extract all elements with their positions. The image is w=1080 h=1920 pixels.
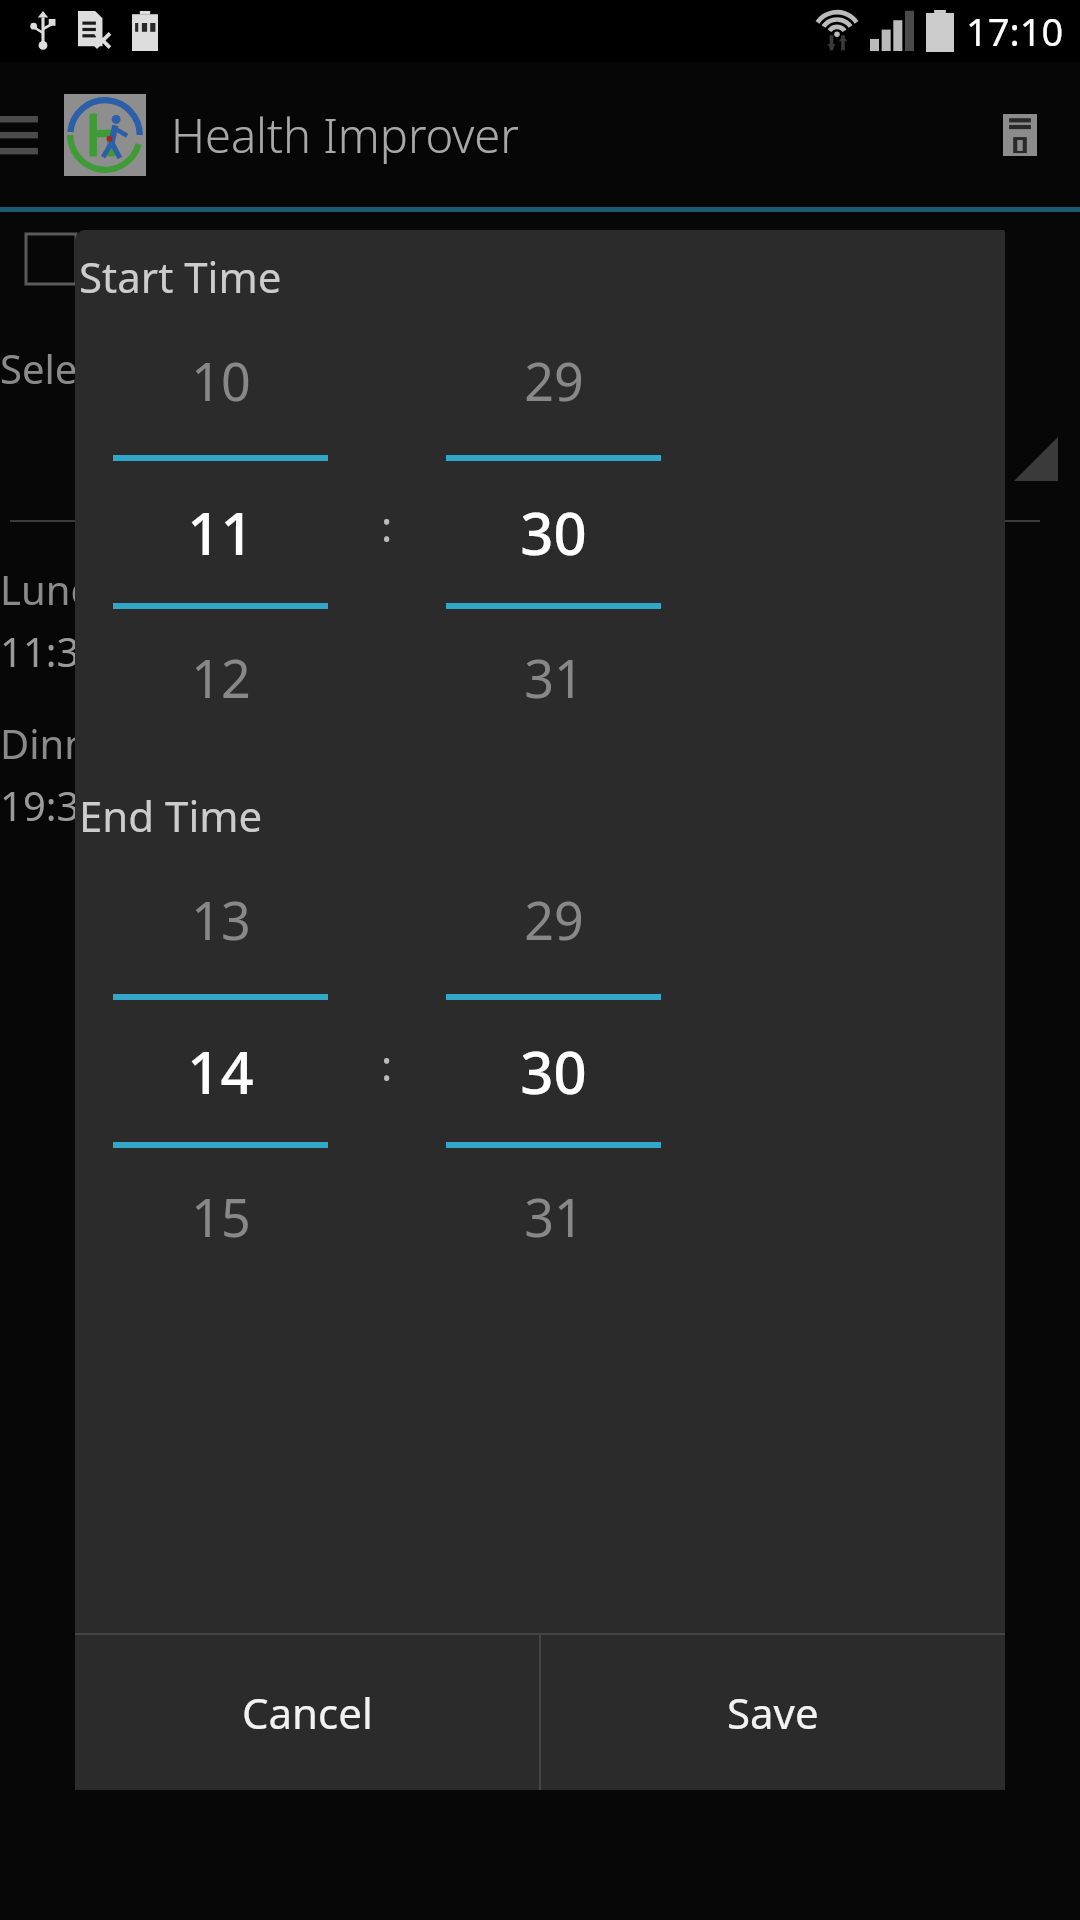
button[interactable]: 29 xyxy=(446,844,661,1284)
staticText: 17:10 xyxy=(966,5,1064,57)
staticText: 13 xyxy=(191,884,251,955)
button[interactable]: Open navigation menu xyxy=(0,62,62,207)
staticText: : xyxy=(381,1036,393,1093)
staticText: 30 xyxy=(520,493,587,572)
staticText: 15 xyxy=(191,1181,251,1252)
button[interactable]: 10 xyxy=(113,305,328,745)
staticText: Cancel xyxy=(242,1684,373,1741)
staticText: 31 xyxy=(524,642,584,713)
staticText: Save xyxy=(727,1684,819,1741)
button[interactable]: Save xyxy=(960,62,1080,207)
staticText: 12 xyxy=(191,642,251,713)
button[interactable]: Toggle xyxy=(24,232,78,286)
staticText: 14 xyxy=(187,1032,254,1111)
staticText: : xyxy=(381,497,393,554)
staticText: Dinner xyxy=(0,716,129,770)
staticText: 10 xyxy=(191,345,251,416)
staticText: 11 xyxy=(187,493,254,572)
button[interactable]: Save xyxy=(541,1635,1005,1790)
staticText: 30 xyxy=(520,1032,587,1111)
staticText: Yesterday xyxy=(100,437,292,494)
button[interactable]: Cancel xyxy=(75,1635,539,1790)
staticText: 29 xyxy=(524,345,584,416)
staticText: 31 xyxy=(524,1181,584,1252)
staticText: 29 xyxy=(524,884,584,955)
staticText: Health Improver xyxy=(171,103,519,167)
staticText: 11:30 xyxy=(0,624,103,678)
button[interactable]: 29 xyxy=(446,305,661,745)
button[interactable]: 13 xyxy=(113,844,328,1284)
staticText: Select Day xyxy=(0,341,194,395)
staticText: Start Time xyxy=(79,248,282,305)
staticText: Lunch xyxy=(0,562,115,616)
staticText: 19:30 xyxy=(0,778,103,832)
staticText: End Time xyxy=(79,787,263,844)
